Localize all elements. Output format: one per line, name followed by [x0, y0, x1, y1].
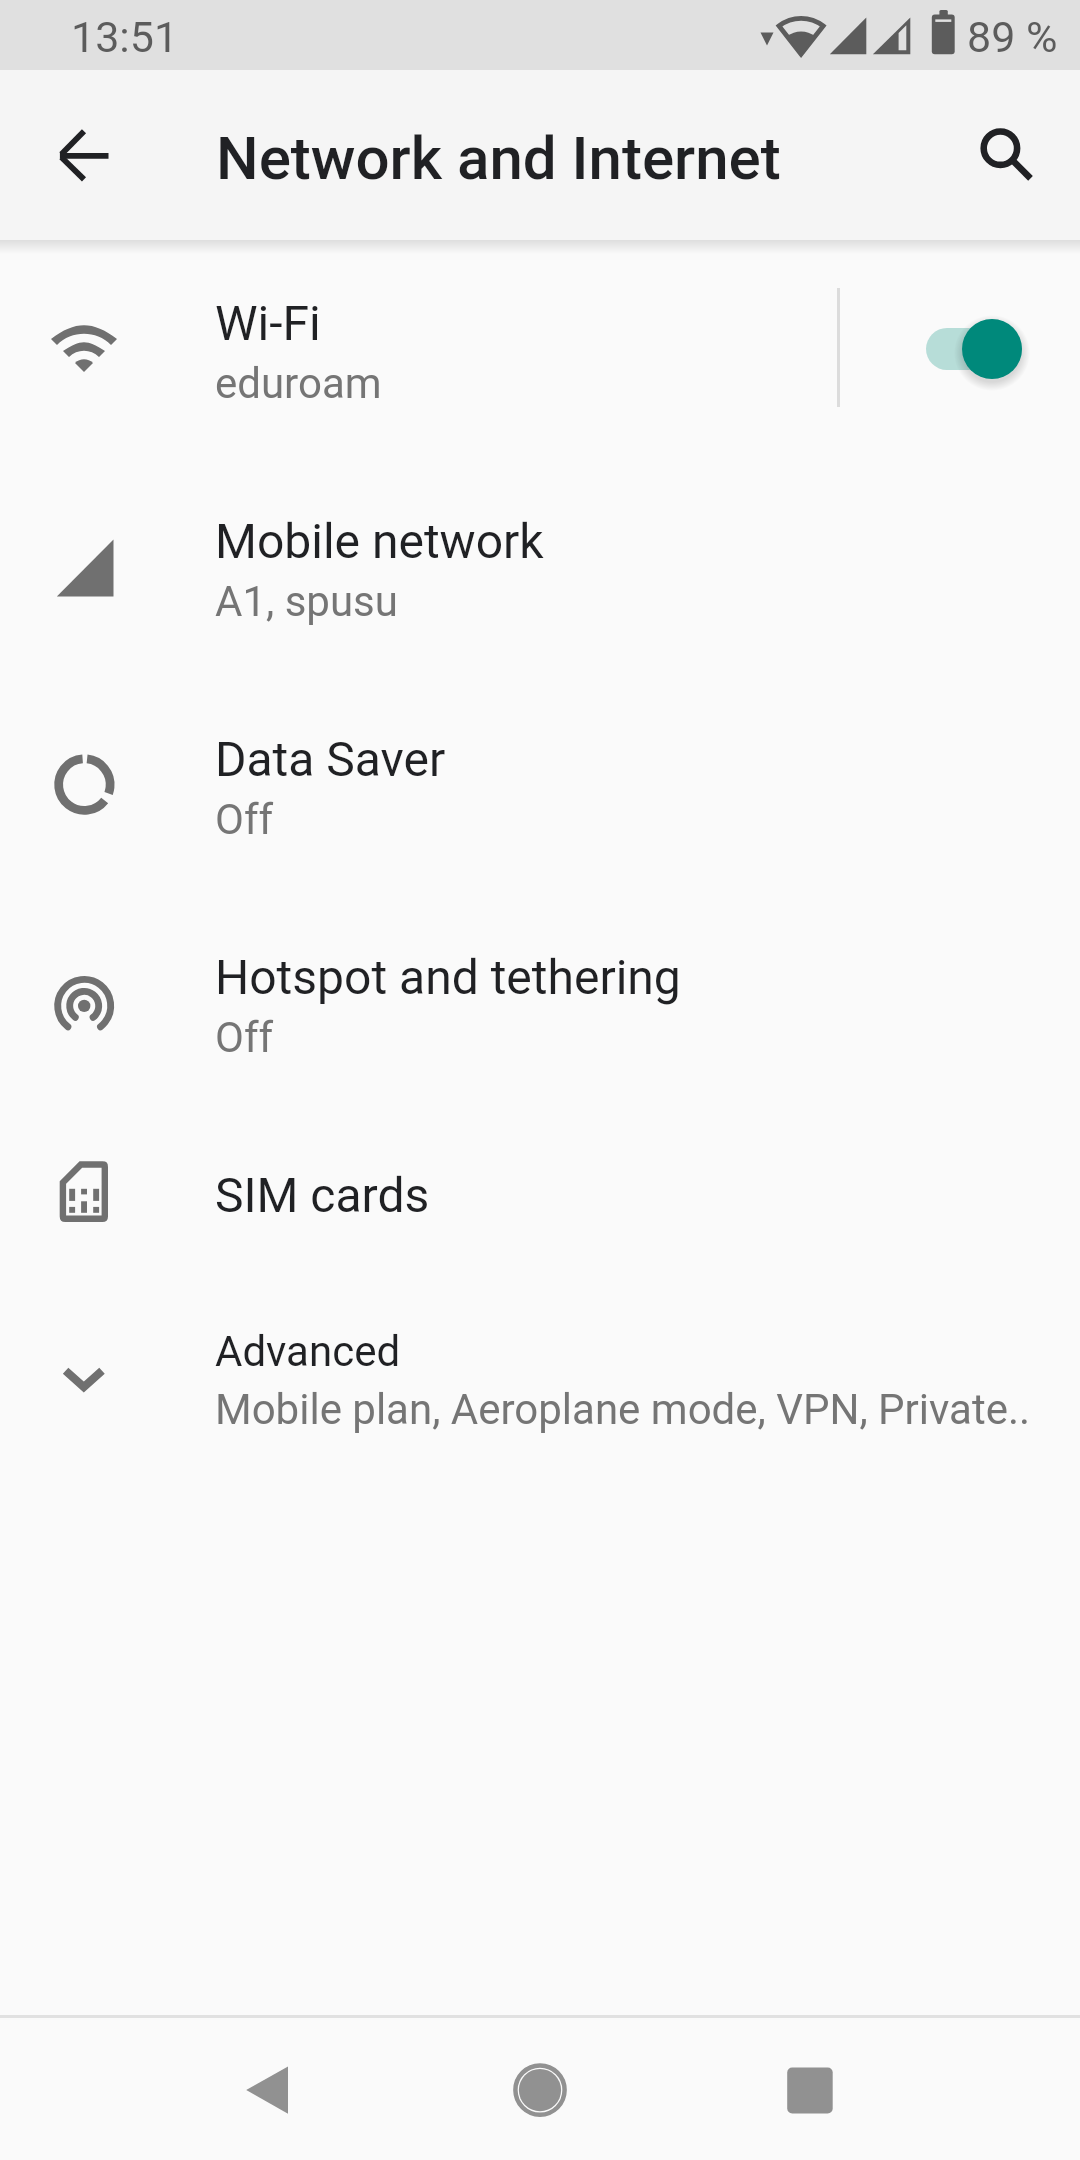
staticText: Wi-Fi [215, 295, 321, 351]
button[interactable]: Recent apps [750, 2030, 870, 2150]
button[interactable]: Data Saver [0, 686, 1080, 904]
button[interactable]: SIM cards [0, 1122, 1080, 1280]
staticText: Off [215, 795, 274, 844]
button[interactable]: Advanced [0, 1280, 1080, 1498]
staticText: Hotspot and tethering [215, 949, 681, 1005]
button[interactable]: Back [207, 2030, 327, 2150]
staticText: Off [215, 1013, 274, 1062]
staticText: Mobile plan, Aeroplane mode, VPN, Privat… [215, 1385, 1031, 1434]
button[interactable]: Mobile network [0, 468, 1080, 686]
staticText: Data Saver [215, 731, 446, 787]
staticText: 13:51 [71, 12, 179, 62]
staticText: 89 % [967, 12, 1058, 62]
staticText: A1, spusu [215, 577, 398, 626]
button[interactable]: Hotspot and tethering [0, 904, 1080, 1122]
button[interactable]: Navigate up [24, 95, 144, 215]
button[interactable]: Home [480, 2030, 600, 2150]
staticText: Network and Internet [216, 123, 781, 193]
button[interactable]: Search [940, 95, 1060, 215]
staticText: Mobile network [215, 513, 544, 569]
button[interactable]: Wi-Fi [0, 250, 1080, 468]
staticText: SIM cards [215, 1167, 430, 1223]
button[interactable]: Wi-Fi on/off [900, 250, 1080, 468]
staticText: eduroam [215, 359, 382, 408]
staticText: Advanced [215, 1327, 401, 1376]
